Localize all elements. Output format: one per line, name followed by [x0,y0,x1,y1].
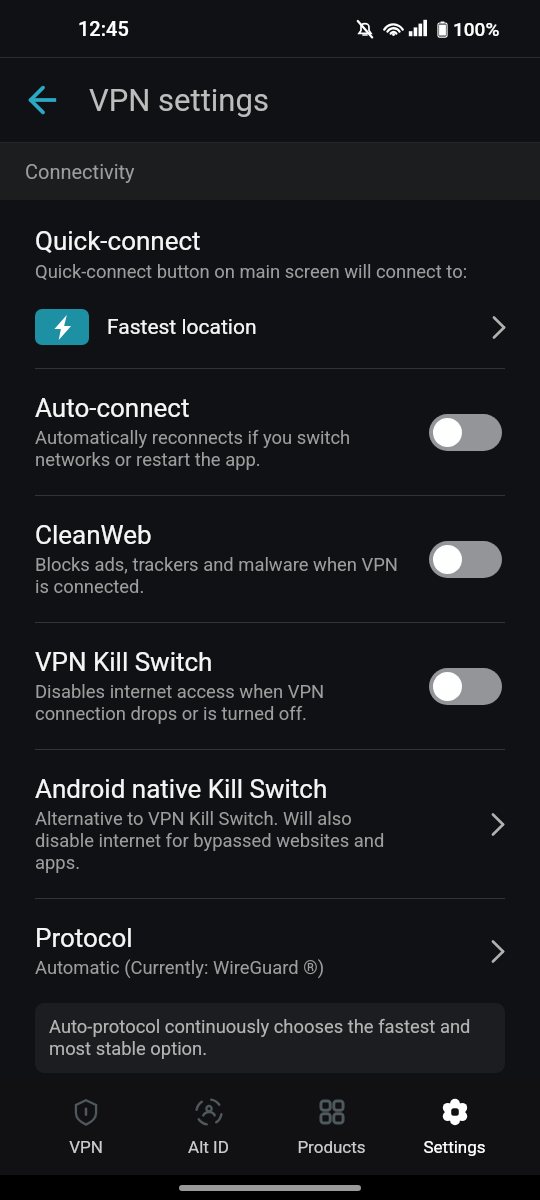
staticText: Auto-protocol continuously chooses the f… [49,1016,471,1038]
button[interactable]: VPN [24,1098,147,1157]
staticText: most stable option. [49,1038,208,1060]
staticText: Connectivity [25,160,135,183]
staticText: Alternative to VPN Kill Switch. Will als… [35,808,352,830]
staticText: Quick-connect button on main screen will… [35,261,468,283]
staticText: 12:45 [78,17,129,40]
button[interactable]: CleanWeb [0,496,540,622]
staticText: Automatically reconnects if you switch [35,427,351,449]
button[interactable]: VPN Kill Switch [0,623,540,749]
button[interactable]: Products [270,1098,393,1157]
staticText: networks or restart the app. [35,449,261,471]
staticText: Quick-connect [35,226,201,256]
button[interactable]: Back [17,74,69,126]
staticText: Blocks ads, trackers and malware when VP… [35,554,398,576]
staticText: 100% [453,18,500,40]
staticText: disable internet for bypassed websites a… [35,830,385,852]
staticText: Disables internet access when VPN [35,681,325,703]
button[interactable]: Protocol [0,899,540,1003]
button[interactable]: Android native Kill Switch [0,750,540,898]
staticText: Android native Kill Switch [35,774,328,804]
staticText: connection drops or is turned off. [35,703,307,725]
staticText: Automatic (Currently: WireGuard ®) [35,957,325,979]
staticText: apps. [35,852,80,874]
staticText: CleanWeb [35,520,152,550]
staticText: VPN Kill Switch [35,647,213,677]
staticText: VPN [69,1137,103,1157]
staticText: is connected. [35,576,145,598]
button[interactable]: Auto-connect [0,369,540,495]
staticText: VPN settings [89,82,269,118]
button[interactable]: Settings [393,1098,516,1157]
staticText: Auto-connect [35,393,190,423]
button[interactable]: Alt ID [147,1098,270,1157]
staticText: Alt ID [188,1137,229,1157]
staticText: Products [297,1137,366,1157]
staticText: Protocol [35,923,133,953]
staticText: Fastest location [107,315,488,340]
staticText: Settings [423,1137,486,1157]
button[interactable]: Fastest location [35,309,510,345]
